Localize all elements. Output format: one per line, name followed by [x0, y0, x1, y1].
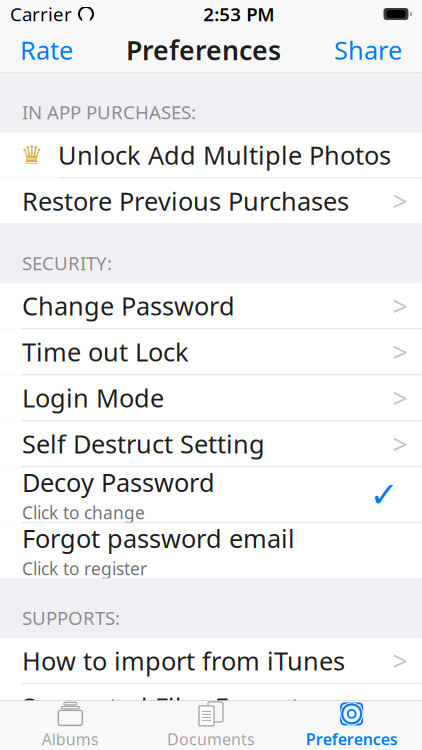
staticText: >	[392, 735, 407, 750]
staticText: Click to register	[22, 557, 147, 580]
staticText: SECURITY:	[22, 250, 112, 275]
staticText: Time out Lock	[22, 335, 189, 369]
staticText: Contact Support	[22, 736, 216, 750]
button[interactable]: Decoy Password	[0, 467, 422, 522]
staticText: Unlock Add Multiple Photos	[58, 138, 391, 172]
staticText: Decoy Password	[22, 465, 215, 499]
button[interactable]: ♛	[0, 132, 422, 177]
staticText: Preferences	[306, 728, 398, 750]
staticText: Preferences	[126, 32, 281, 68]
staticText: 2:53 PM	[203, 2, 274, 26]
button[interactable]: Preferences	[281, 701, 422, 750]
button[interactable]: Forgot password email	[0, 523, 422, 578]
staticText: >	[392, 380, 407, 415]
staticText: >	[392, 689, 407, 724]
button[interactable]: Change Password	[0, 283, 422, 328]
staticText: Change Password	[22, 289, 235, 323]
staticText: ✓	[369, 475, 398, 514]
button[interactable]: Documents	[141, 701, 281, 750]
button[interactable]: Time out Lock	[0, 329, 422, 374]
button[interactable]: Supported Files Format	[0, 684, 422, 729]
staticText: >	[392, 643, 407, 678]
staticText: Restore Previous Purchases	[22, 184, 349, 218]
staticText: >	[392, 183, 407, 219]
button[interactable]: How to import from iTunes	[0, 638, 422, 683]
staticText: SUPPORTS:	[22, 605, 120, 630]
staticText: Forgot password email	[22, 521, 295, 555]
staticText: Login Mode	[22, 381, 164, 415]
staticText: IN APP PURCHASES:	[22, 100, 196, 124]
staticText: Self Destruct Setting	[22, 427, 265, 461]
staticText: How to import from iTunes	[22, 644, 345, 677]
button[interactable]: Restore Previous Purchases	[0, 178, 422, 223]
button[interactable]: Albums	[0, 701, 141, 750]
staticText: Albums	[42, 728, 99, 750]
button[interactable]: Share	[314, 23, 422, 77]
staticText: Carrier	[10, 2, 72, 26]
staticText: Rate	[20, 33, 73, 67]
staticText: Share	[334, 33, 402, 67]
button[interactable]: Self Destruct Setting	[0, 421, 422, 466]
staticText: >	[392, 426, 407, 461]
staticText: Click to change	[22, 501, 145, 524]
staticText: ♛	[20, 141, 43, 169]
staticText: >	[392, 288, 407, 323]
staticText: Documents	[167, 728, 255, 750]
button[interactable]: Login Mode	[0, 375, 422, 420]
staticText: Supported Files Format	[22, 690, 300, 723]
button[interactable]: Rate	[0, 23, 93, 77]
staticText: >	[392, 334, 407, 369]
button[interactable]: Contact Support	[0, 730, 422, 750]
